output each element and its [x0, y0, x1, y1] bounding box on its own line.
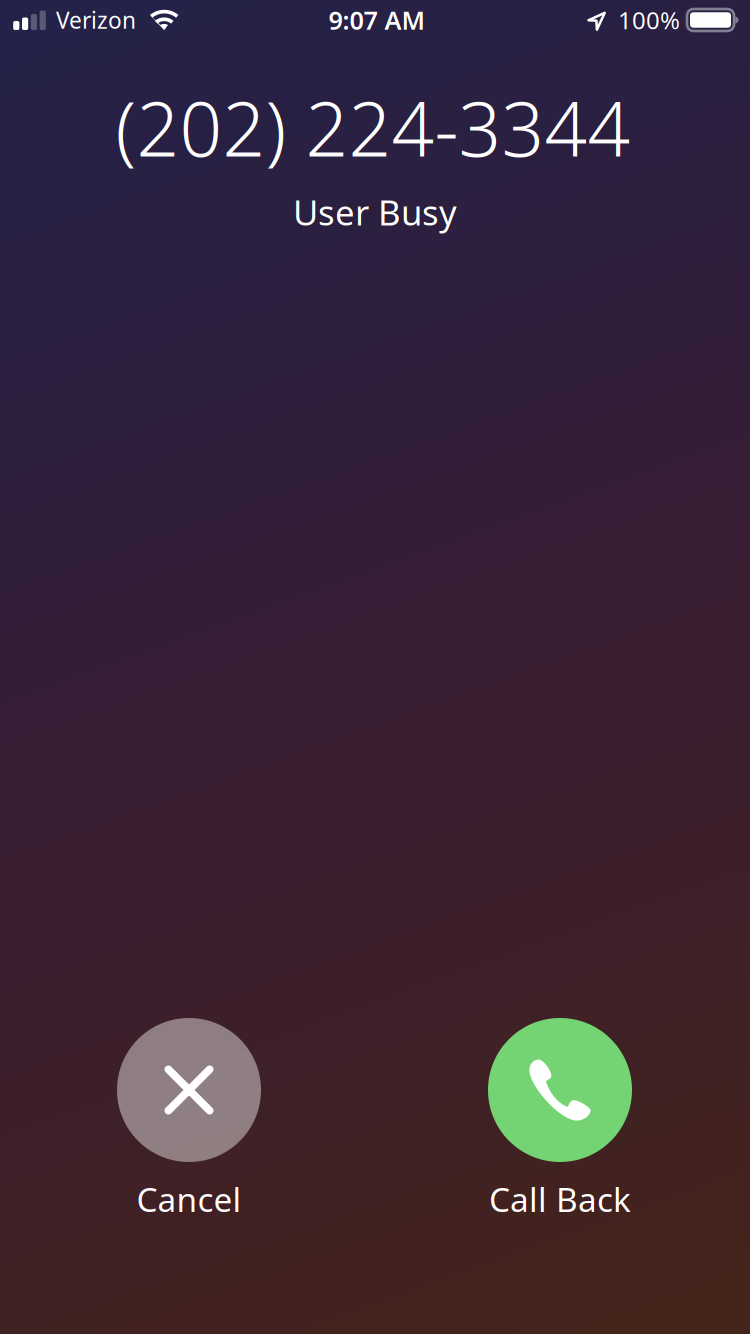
staticText: 100% [618, 4, 680, 36]
staticText: 9:07 AM [328, 3, 425, 37]
staticText: Verizon [56, 5, 136, 35]
button[interactable]: Cancel [69, 1018, 309, 1214]
staticText: Call Back [489, 1177, 631, 1221]
staticText: User Busy [293, 189, 457, 235]
staticText: Cancel [136, 1177, 241, 1221]
button[interactable]: Call Back [440, 1018, 680, 1214]
staticText: (202) 224-3344 [115, 78, 630, 177]
